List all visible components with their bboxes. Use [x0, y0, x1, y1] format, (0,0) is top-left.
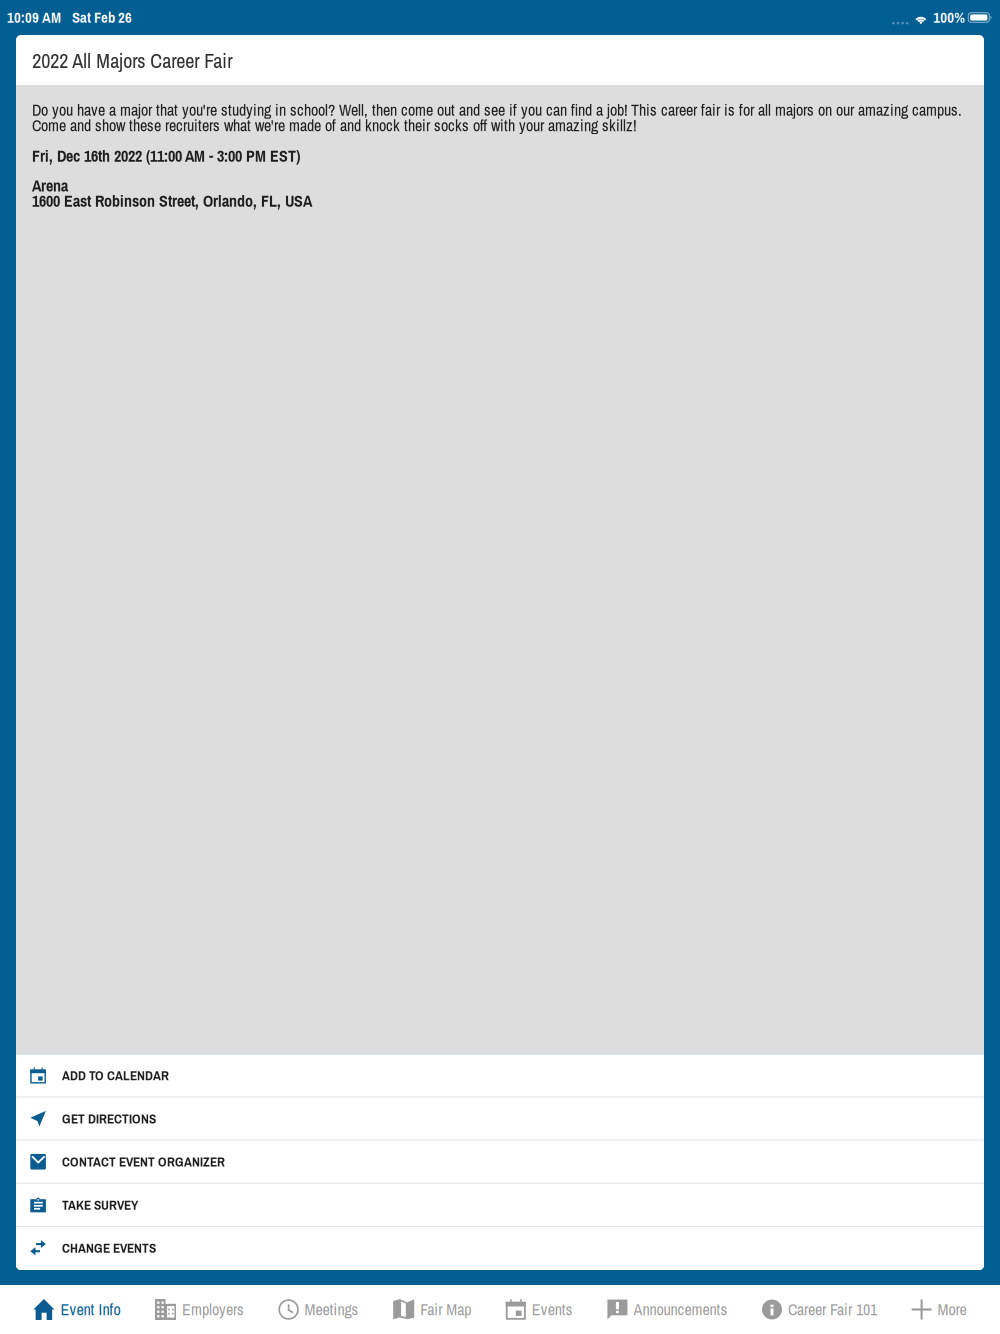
staticText: 2022 All Majors Career Fair: [32, 47, 232, 74]
button[interactable]: Employers: [155, 1285, 244, 1334]
button[interactable]: ADD TO CALENDAR: [16, 1054, 984, 1098]
button[interactable]: Announcements: [607, 1285, 727, 1334]
button[interactable]: Career Fair 101: [762, 1285, 877, 1334]
staticText: Come and show these recruiters what we'r…: [32, 115, 637, 136]
button[interactable]: Fair Map: [393, 1285, 471, 1334]
staticText: Employers: [182, 1299, 244, 1320]
staticText: CHANGE EVENTS: [62, 1239, 156, 1257]
button[interactable]: Meetings: [279, 1285, 359, 1334]
staticText: TAKE SURVEY: [62, 1196, 138, 1214]
staticText: 100%: [933, 8, 965, 27]
staticText: Arena: [32, 175, 68, 196]
button[interactable]: CHANGE EVENTS: [16, 1227, 984, 1270]
staticText: Event Info: [60, 1299, 120, 1320]
staticText: 1600 East Robinson Street, Orlando, FL, …: [32, 190, 312, 212]
staticText: 10:09 AM: [7, 8, 61, 27]
button[interactable]: Event Info: [33, 1285, 120, 1334]
staticText: CONTACT EVENT ORGANIZER: [62, 1153, 225, 1171]
button[interactable]: CONTACT EVENT ORGANIZER: [16, 1141, 984, 1184]
button[interactable]: TAKE SURVEY: [16, 1184, 984, 1227]
staticText: Fri, Dec 16th 2022 (11:00 AM - 3:00 PM E…: [32, 145, 300, 167]
staticText: ADD TO CALENDAR: [62, 1067, 169, 1085]
staticText: Do you have a major that you're studying…: [32, 99, 962, 121]
staticText: Career Fair 101: [788, 1299, 877, 1320]
staticText: GET DIRECTIONS: [62, 1110, 156, 1128]
button[interactable]: More: [912, 1285, 967, 1334]
staticText: Sat Feb 26: [72, 8, 132, 27]
staticText: More: [938, 1299, 967, 1320]
button[interactable]: Events: [506, 1285, 573, 1334]
staticText: Meetings: [305, 1299, 359, 1320]
staticText: Announcements: [633, 1299, 727, 1320]
staticText: Events: [532, 1299, 573, 1320]
button[interactable]: GET DIRECTIONS: [16, 1098, 984, 1141]
staticText: Fair Map: [420, 1299, 471, 1320]
